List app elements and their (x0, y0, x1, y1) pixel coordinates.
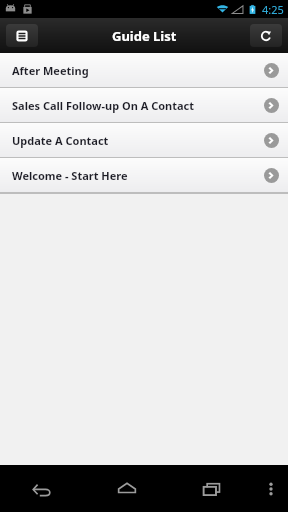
button[interactable]: After Meeting (0, 53, 288, 87)
staticText: Update A Contact (12, 133, 109, 148)
button[interactable]: Recent apps (169, 465, 254, 512)
staticText: Welcome - Start Here (12, 168, 128, 183)
staticText: 4:25 (262, 2, 284, 17)
button[interactable]: Refresh (250, 24, 282, 47)
staticText: Sales Call Follow-up On A Contact (12, 98, 195, 113)
button[interactable]: Update A Contact (0, 123, 288, 157)
button[interactable]: More options (254, 465, 288, 512)
button[interactable]: Welcome - Start Here (0, 158, 288, 192)
staticText: Guide List (112, 27, 177, 45)
staticText: After Meeting (12, 63, 89, 78)
button[interactable]: Menu (6, 24, 38, 47)
button[interactable]: Home (84, 465, 169, 512)
button[interactable]: Sales Call Follow-up On A Contact (0, 88, 288, 122)
button[interactable]: Back (0, 465, 84, 512)
